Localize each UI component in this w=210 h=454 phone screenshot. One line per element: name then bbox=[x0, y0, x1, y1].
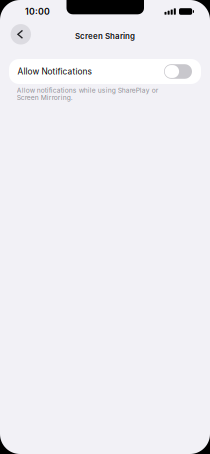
staticText: Screen Sharing bbox=[75, 31, 135, 41]
staticText: Allow Notifications bbox=[17, 66, 91, 77]
button[interactable]: Off bbox=[9, 59, 201, 84]
staticText: 10:00 bbox=[25, 6, 50, 17]
staticText: Allow notifications while using SharePla… bbox=[17, 86, 159, 94]
staticText: Screen Mirroring. bbox=[17, 94, 73, 102]
button[interactable]: Back bbox=[9, 22, 33, 46]
